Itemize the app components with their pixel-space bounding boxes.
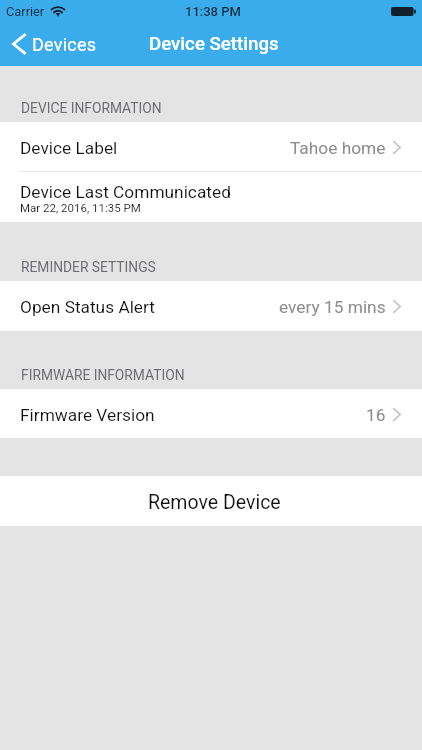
button[interactable]: Firmware Version (0, 389, 422, 438)
staticText: Device Last Communicated (20, 182, 231, 202)
button[interactable]: Open Status Alert (0, 281, 422, 331)
staticText: Carrier (6, 4, 45, 19)
other: Back to Devices (12, 33, 26, 55)
staticText: Device Settings (149, 33, 279, 55)
staticText: FIRMWARE INFORMATION (21, 367, 185, 383)
staticText: Open Status Alert (20, 297, 155, 317)
staticText: every 15 mins (279, 297, 386, 317)
button[interactable]: Remove Device (0, 476, 422, 526)
staticText: Devices (32, 34, 97, 55)
button[interactable]: Back to Devices (0, 22, 107, 66)
button[interactable]: Device Label (0, 122, 422, 172)
staticText: Firmware Version (20, 405, 155, 425)
staticText: 11:38 PM (185, 4, 241, 19)
button[interactable]: Device Last Communicated (0, 172, 422, 222)
staticText: DEVICE INFORMATION (21, 100, 162, 116)
staticText: Tahoe home (290, 138, 386, 158)
staticText: REMINDER SETTINGS (21, 259, 156, 275)
staticText: Device Label (20, 138, 118, 158)
staticText: Mar 22, 2016, 11:35 PM (20, 201, 141, 214)
staticText: 16 (366, 405, 386, 425)
staticText: Remove Device (148, 491, 281, 514)
